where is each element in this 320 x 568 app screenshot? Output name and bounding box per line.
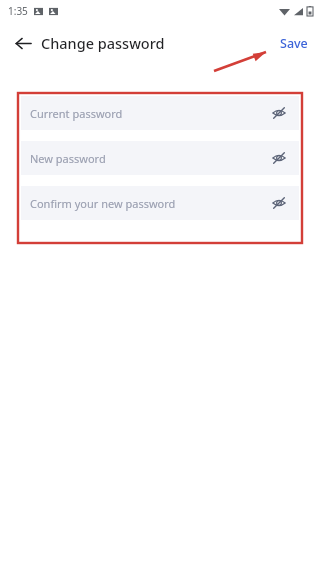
staticText: Change password [41, 33, 165, 53]
staticText: 1:35 [8, 4, 28, 18]
staticText: New password [30, 151, 106, 166]
button[interactable]: Save [274, 29, 314, 58]
staticText: Current password [30, 106, 123, 121]
button[interactable]: Show password [267, 191, 291, 215]
button[interactable]: Show password [267, 146, 291, 170]
button[interactable]: Show password [267, 101, 291, 125]
staticText: Confirm your new password [30, 196, 176, 211]
staticText: Save [280, 35, 308, 52]
button[interactable]: Back [6, 26, 40, 60]
button[interactable]: New password [21, 141, 299, 175]
button[interactable]: Current password [21, 96, 299, 130]
button[interactable]: Confirm your new password [21, 186, 299, 220]
